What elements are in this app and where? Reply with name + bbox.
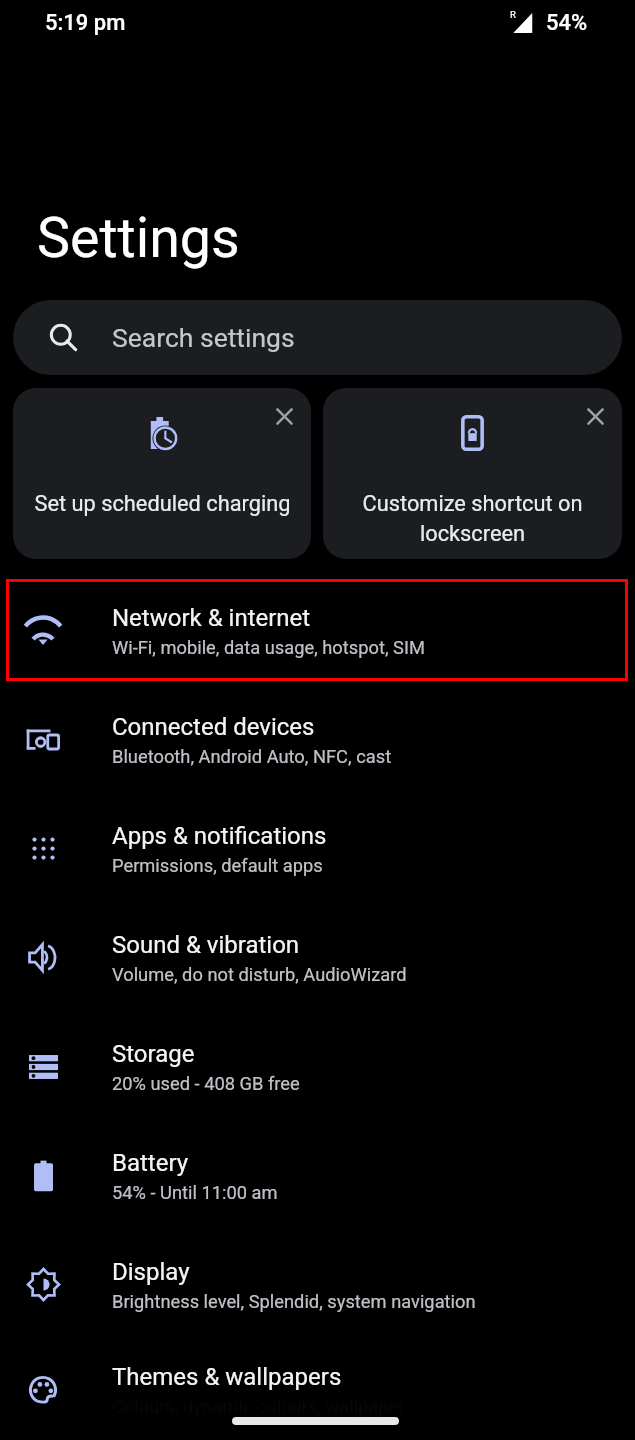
- staticText: Permissions, default apps: [112, 855, 323, 876]
- staticText: Themes & wallpapers: [112, 1363, 342, 1391]
- staticText: R: [510, 9, 516, 20]
- button[interactable]: Dismiss: [265, 397, 303, 435]
- button[interactable]: Search settings: [13, 300, 622, 375]
- staticText: Volume, do not disturb, AudioWizard: [112, 964, 407, 985]
- staticText: Sound & vibration: [112, 931, 300, 959]
- button[interactable]: Connected devices: [0, 685, 635, 794]
- staticText: Connected devices: [112, 713, 315, 741]
- button[interactable]: Display: [0, 1230, 635, 1339]
- button[interactable]: Storage: [0, 1012, 635, 1121]
- button[interactable]: Apps & notifications: [0, 794, 635, 903]
- staticText: Customize shortcut on lockscreen: [329, 491, 616, 546]
- staticText: 20% used - 408 GB free: [112, 1073, 300, 1094]
- staticText: Brightness level, Splendid, system navig…: [112, 1291, 476, 1312]
- staticText: Battery: [112, 1149, 189, 1177]
- button[interactable]: Sound & vibration: [0, 903, 635, 1012]
- staticText: Apps & notifications: [112, 822, 327, 850]
- button[interactable]: Themes & wallpapers: [0, 1339, 635, 1440]
- button[interactable]: Network & internet: [0, 576, 635, 685]
- staticText: Set up scheduled charging: [34, 491, 291, 517]
- staticText: Display: [112, 1258, 190, 1286]
- staticText: Storage: [112, 1040, 195, 1068]
- button[interactable]: Battery: [0, 1121, 635, 1230]
- button[interactable]: Dismiss: [13, 388, 311, 559]
- staticText: Wi-Fi, mobile, data usage, hotspot, SIM: [112, 637, 425, 658]
- staticText: 54% - Until 11:00 am: [112, 1182, 278, 1203]
- staticText: Network & internet: [112, 604, 311, 632]
- staticText: Settings: [37, 206, 240, 271]
- staticText: 5:19 pm: [45, 10, 126, 36]
- staticText: Bluetooth, Android Auto, NFC, cast: [112, 746, 392, 767]
- button[interactable]: Dismiss: [323, 388, 622, 559]
- staticText: Search settings: [112, 322, 295, 353]
- button[interactable]: Dismiss: [576, 397, 614, 435]
- staticText: 54%: [546, 10, 588, 36]
